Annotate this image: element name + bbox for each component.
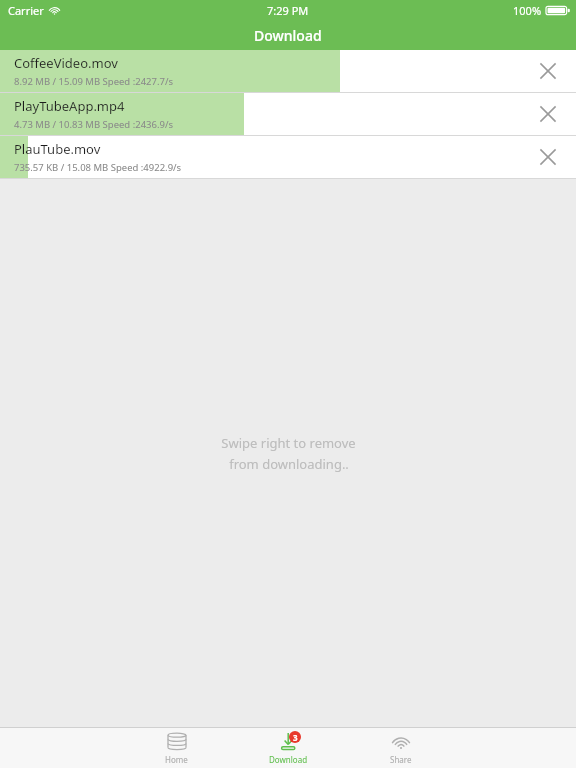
staticText: Share — [390, 754, 412, 765]
staticText: PlayTubeApp.mp4 — [14, 97, 125, 115]
staticText: from downloading.. — [229, 455, 349, 473]
button[interactable]: Remove PlauTube.mov — [530, 139, 566, 175]
staticText: CoffeeVideo.mov — [14, 54, 118, 72]
staticText: Download — [254, 26, 322, 45]
staticText: Home — [165, 754, 188, 765]
button[interactable]: CoffeeVideo.mov — [0, 50, 576, 92]
button[interactable]: Remove PlayTubeApp.mp4 — [530, 96, 566, 132]
button[interactable]: Home — [135, 728, 218, 768]
staticText: 4.73 MB / 10.83 MB Speed :2436.9/s — [14, 118, 174, 131]
staticText: PlauTube.mov — [14, 140, 101, 158]
staticText: 7:29 PM — [267, 3, 309, 18]
staticText: 100% — [513, 3, 542, 18]
staticText: Download — [269, 754, 308, 765]
button[interactable]: Share — [359, 728, 442, 768]
staticText: Swipe right to remove — [221, 434, 356, 452]
staticText: 3 — [293, 732, 298, 743]
button[interactable]: 3 — [247, 728, 330, 768]
staticText: Carrier — [8, 3, 44, 18]
button[interactable]: Remove CoffeeVideo.mov — [530, 53, 566, 89]
button[interactable]: PlauTube.mov — [0, 136, 576, 178]
button[interactable]: PlayTubeApp.mp4 — [0, 93, 576, 135]
staticText: 8.92 MB / 15.09 MB Speed :2427.7/s — [14, 75, 174, 88]
staticText: 735.57 KB / 15.08 MB Speed :4922.9/s — [14, 161, 182, 174]
